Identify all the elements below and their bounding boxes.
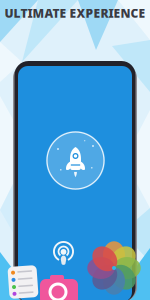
button[interactable]: Boost — [0, 0, 59, 59]
staticText: ULTIMATE EXPERIENCE — [4, 5, 145, 21]
